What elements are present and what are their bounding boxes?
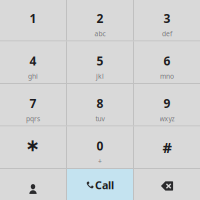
button[interactable]: # [134, 126, 200, 168]
staticText: abc [94, 29, 105, 38]
staticText: + [98, 157, 102, 166]
staticText: def [162, 29, 172, 38]
button[interactable]: 3 [134, 0, 200, 40]
staticText: 9 [163, 95, 170, 111]
staticText: 3 [163, 10, 170, 26]
staticText: ghi [28, 72, 38, 81]
button[interactable]: 2 [67, 0, 133, 40]
staticText: tuv [95, 114, 104, 123]
button[interactable]: ∗ [0, 126, 66, 168]
staticText: ∗ [25, 135, 40, 155]
staticText: 8 [96, 95, 103, 111]
staticText: 6 [163, 53, 170, 69]
staticText: mno [160, 72, 174, 81]
button[interactable]: 9 [134, 84, 200, 125]
button[interactable]: 8 [67, 84, 133, 125]
staticText: 0 [96, 138, 103, 154]
staticText: # [162, 137, 171, 157]
staticText: 7 [29, 95, 36, 111]
staticText: 2 [96, 10, 103, 26]
staticText: wxyz [159, 114, 174, 123]
button[interactable]: Contacts [0, 169, 66, 200]
button[interactable]: 1 [0, 0, 66, 40]
staticText: 5 [96, 53, 103, 69]
staticText: pqrs [26, 114, 40, 123]
staticText: 1 [29, 10, 36, 26]
button[interactable]: 5 [67, 41, 133, 83]
staticText: 4 [29, 53, 36, 69]
button[interactable]: 7 [0, 84, 66, 125]
button[interactable]: 6 [134, 41, 200, 83]
button[interactable]: Call [67, 169, 133, 200]
staticText: jkl [96, 72, 104, 81]
button[interactable]: 0 [67, 126, 133, 168]
button[interactable]: 4 [0, 41, 66, 83]
staticText: Call [95, 178, 114, 192]
button[interactable]: Delete [134, 169, 200, 200]
